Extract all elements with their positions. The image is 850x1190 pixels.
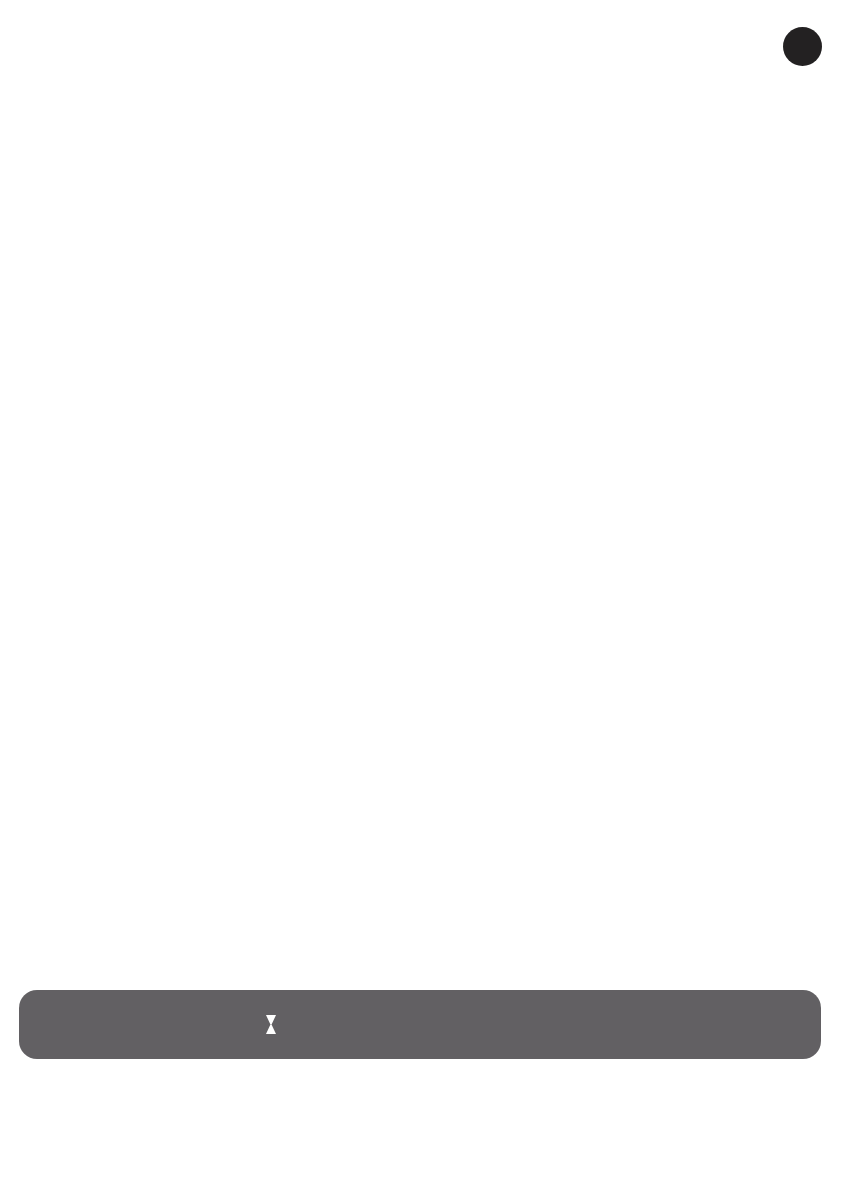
button[interactable]: Pending [19, 990, 821, 1059]
button[interactable]: Account [783, 27, 822, 66]
